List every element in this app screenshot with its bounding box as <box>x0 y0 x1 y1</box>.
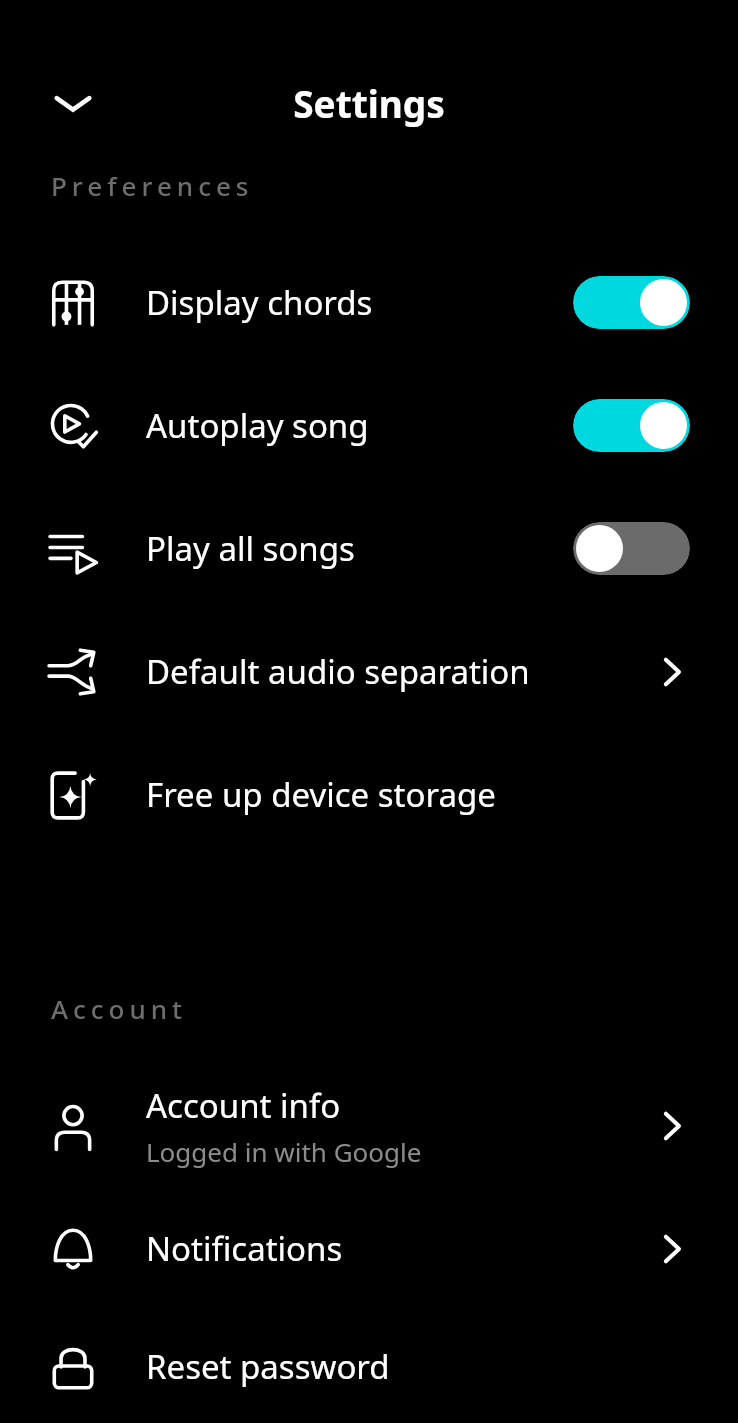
button[interactable]: Free up device storage <box>0 733 738 856</box>
button[interactable]: Display chords on <box>573 276 690 329</box>
staticText: Free up device storage <box>146 772 496 817</box>
button[interactable]: Play all songs <box>0 487 738 610</box>
button[interactable]: Open Account info <box>640 1094 704 1158</box>
button[interactable]: Open Default audio separation <box>640 640 704 704</box>
button[interactable]: Collapse <box>40 70 106 136</box>
staticText: Autoplay song <box>146 403 369 448</box>
staticText: Default audio separation <box>146 649 530 694</box>
staticText: Play all songs <box>146 526 355 571</box>
button[interactable]: Display chords <box>0 241 738 364</box>
staticText: Account info <box>146 1083 341 1128</box>
button[interactable]: Account info <box>0 1064 738 1187</box>
staticText: Reset password <box>146 1344 390 1389</box>
button[interactable]: Play all songs off <box>573 522 690 575</box>
button[interactable]: Open Notifications <box>640 1217 704 1281</box>
staticText: Settings <box>0 78 738 128</box>
staticText: Notifications <box>146 1226 343 1271</box>
button[interactable]: Autoplay song <box>0 364 738 487</box>
button[interactable]: Autoplay song on <box>573 399 690 452</box>
staticText: Logged in with Google <box>146 1134 422 1169</box>
button[interactable]: Notifications <box>0 1187 738 1310</box>
button[interactable]: Reset password <box>0 1310 738 1423</box>
button[interactable]: Default audio separation <box>0 610 738 733</box>
staticText: Preferences <box>51 168 254 203</box>
staticText: Account <box>51 991 188 1026</box>
staticText: Display chords <box>146 280 373 325</box>
